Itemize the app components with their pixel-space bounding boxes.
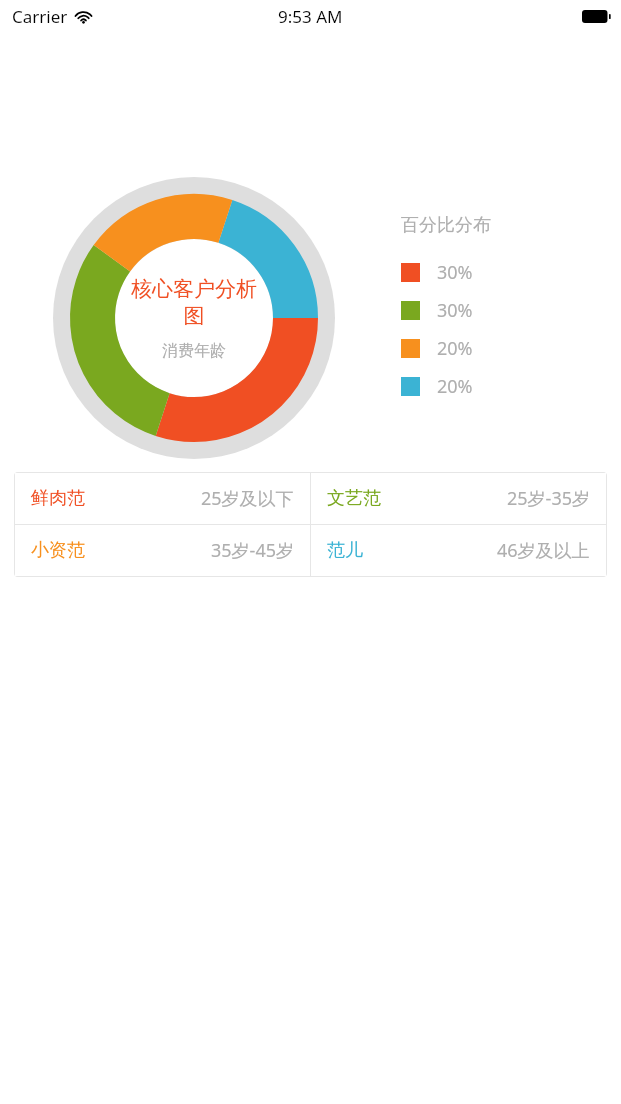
staticText: 小资范 bbox=[31, 539, 85, 562]
staticText: 30% bbox=[437, 298, 473, 323]
button[interactable]: 核心客户分析图 bbox=[53, 177, 335, 459]
staticText: 25岁及以下 bbox=[201, 486, 294, 511]
staticText: 35岁-45岁 bbox=[211, 538, 294, 563]
button[interactable]: 范儿 bbox=[311, 525, 606, 576]
staticText: 20% bbox=[437, 336, 473, 361]
staticText: 百分比分布 bbox=[401, 214, 491, 237]
button[interactable]: 鲜肉范 bbox=[15, 473, 310, 524]
staticText: 30% bbox=[437, 260, 473, 285]
button[interactable]: 文艺范 bbox=[311, 473, 606, 524]
button[interactable]: 20% bbox=[401, 367, 473, 405]
staticText: 25岁-35岁 bbox=[507, 486, 590, 511]
staticText: 9:53 AM bbox=[278, 5, 343, 28]
button[interactable]: 小资范 bbox=[15, 525, 310, 576]
staticText: 鲜肉范 bbox=[31, 487, 85, 510]
button[interactable]: 30% bbox=[401, 253, 473, 291]
staticText: 范儿 bbox=[327, 539, 363, 562]
button[interactable]: 20% bbox=[401, 329, 473, 367]
button[interactable]: 30% bbox=[401, 291, 473, 329]
staticText: 核心客户分析图 bbox=[131, 276, 257, 329]
staticText: 消费年龄 bbox=[162, 341, 226, 361]
staticText: Carrier bbox=[12, 5, 68, 28]
staticText: 46岁及以上 bbox=[497, 538, 590, 563]
staticText: 20% bbox=[437, 374, 473, 399]
staticText: 文艺范 bbox=[327, 487, 381, 510]
